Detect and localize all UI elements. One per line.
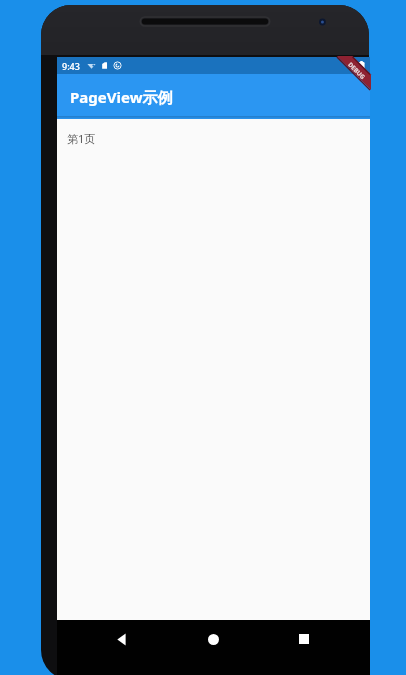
staticText: DEBUG [346,61,367,81]
staticText: PageView示例 [70,87,173,107]
button[interactable]: Recent apps [276,620,332,658]
staticText: 第1页 [67,131,96,146]
button[interactable]: Back [94,620,150,658]
staticText: 9:43 [62,60,80,72]
button[interactable]: Home [185,620,241,658]
